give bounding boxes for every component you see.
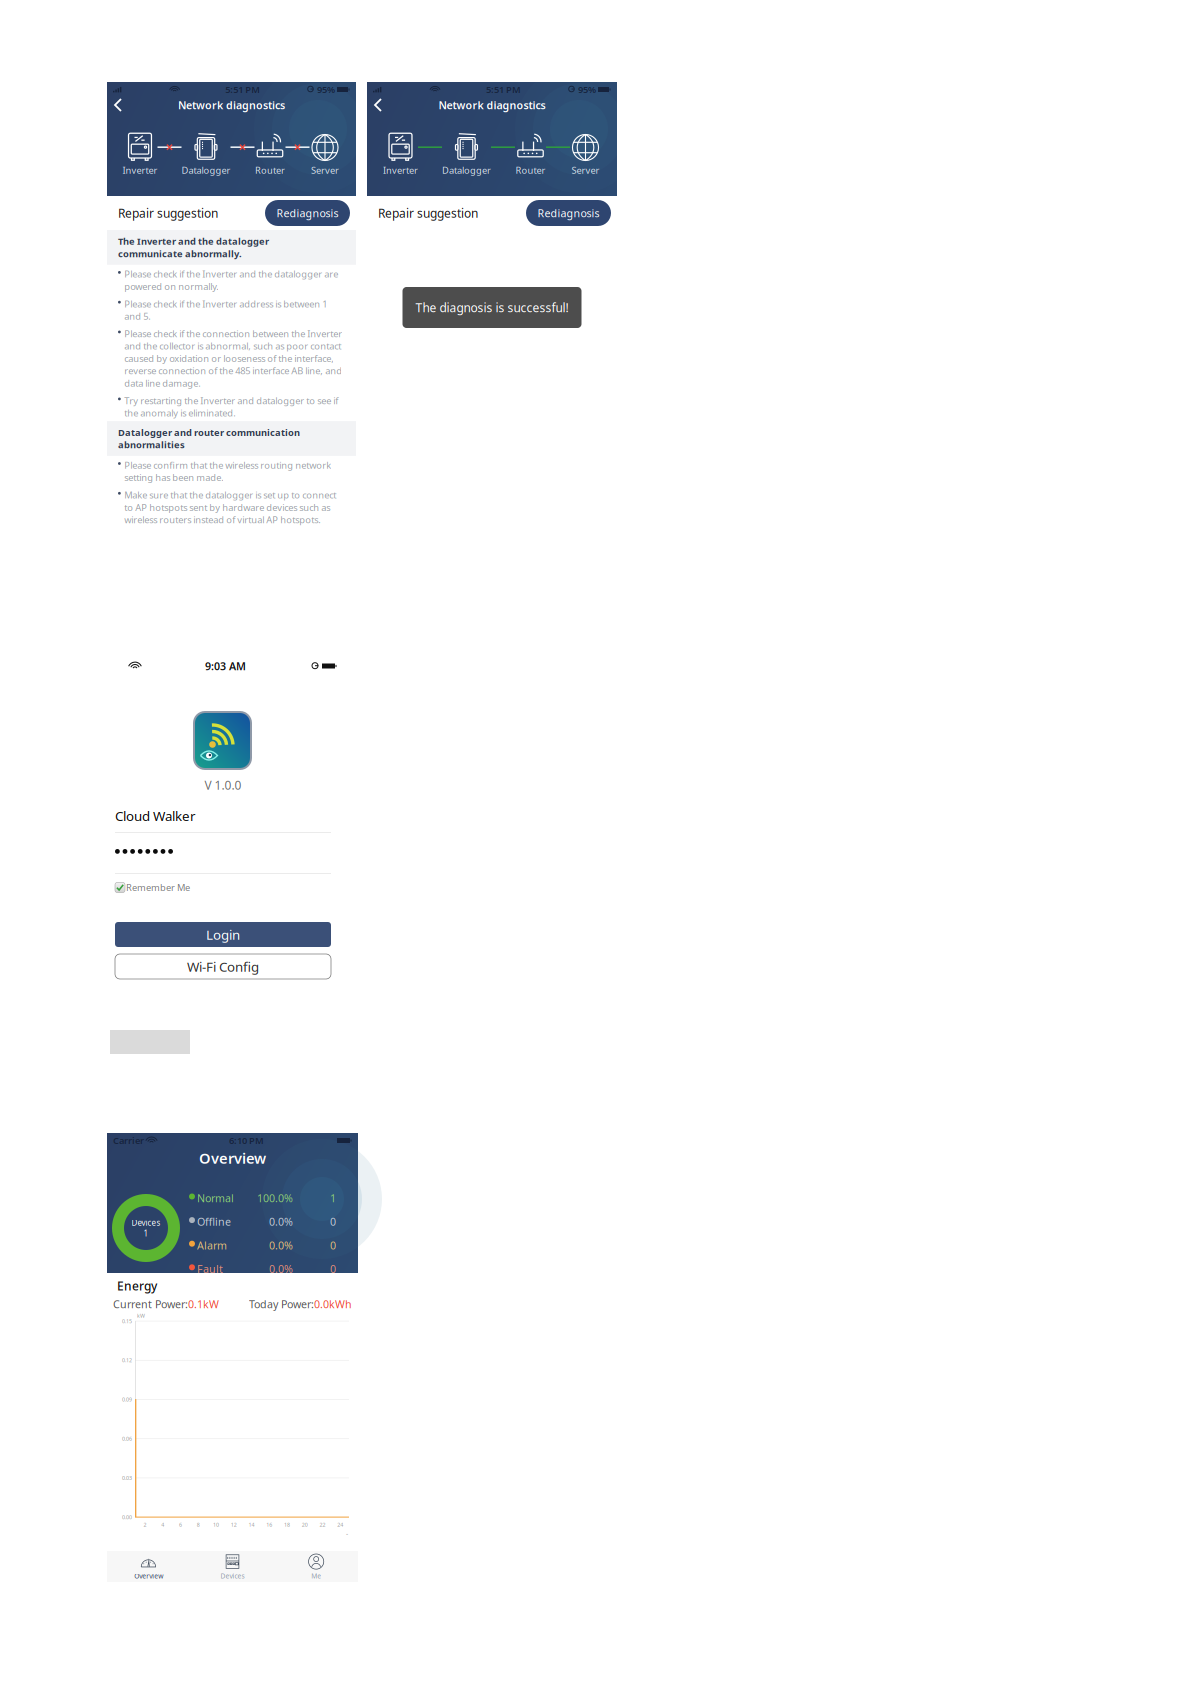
- staticText: Server: [571, 164, 599, 176]
- staticText: Fault: [197, 1262, 223, 1276]
- button[interactable]: Wi-Fi Config: [115, 954, 331, 979]
- staticText: 0.1kW: [188, 1297, 219, 1311]
- staticText: 14: [248, 1521, 254, 1528]
- staticText: Me: [311, 1572, 321, 1580]
- staticText: 16: [266, 1521, 272, 1528]
- staticText: 0.15: [122, 1318, 132, 1325]
- staticText: Cloud Walker: [115, 807, 196, 825]
- staticText: 24: [337, 1521, 343, 1528]
- staticText: Make sure that the datalogger is set up …: [124, 489, 336, 526]
- staticText: 5:51 PM: [225, 83, 260, 96]
- staticText: 0.0kWh: [314, 1297, 352, 1311]
- staticText: Datalogger and router communication abno…: [118, 426, 300, 451]
- staticText: 4: [161, 1521, 164, 1528]
- staticText: 0.06: [122, 1435, 132, 1442]
- staticText: Router: [515, 164, 545, 176]
- staticText: 1: [330, 1191, 336, 1205]
- staticText: Please check if the Inverter and the dat…: [124, 268, 338, 293]
- staticText: 6:10 PM: [229, 1134, 264, 1147]
- staticText: Please check if the connection between t…: [124, 327, 342, 389]
- staticText: Please confirm that the wireless routing…: [124, 459, 331, 484]
- staticText: Login: [206, 926, 240, 943]
- staticText: Datalogger: [181, 164, 230, 176]
- button[interactable]: Rediagnosis: [526, 200, 611, 226]
- staticText: Server: [311, 164, 339, 176]
- staticText: 22: [319, 1521, 325, 1528]
- staticText: 1: [143, 1228, 148, 1239]
- staticText: Network diagnostics: [438, 98, 545, 112]
- button[interactable]: Remember Me: [115, 881, 225, 894]
- staticText: Try restarting the Inverter and datalogg…: [124, 394, 338, 419]
- staticText: Alarm: [197, 1238, 227, 1252]
- staticText: The Inverter and the datalogger communic…: [118, 235, 269, 260]
- staticText: Rediagnosis: [537, 206, 599, 220]
- staticText: Wi-Fi Config: [187, 958, 259, 975]
- button[interactable]: Rediagnosis: [265, 200, 350, 226]
- staticText: 0.03: [122, 1474, 132, 1481]
- staticText: Current Power:: [113, 1297, 188, 1311]
- staticText: 9:03 AM: [205, 659, 246, 673]
- staticText: V 1.0.0: [204, 777, 241, 793]
- staticText: Network diagnostics: [178, 98, 285, 112]
- staticText: Offline: [197, 1215, 231, 1229]
- button[interactable]: Back: [367, 95, 617, 115]
- staticText: Devices: [131, 1217, 160, 1228]
- staticText: 0.00: [122, 1514, 132, 1521]
- staticText: Router: [255, 164, 285, 176]
- staticText: 0: [330, 1262, 336, 1276]
- staticText: Devices: [220, 1572, 244, 1580]
- staticText: Overview: [199, 1148, 266, 1168]
- staticText: 12: [231, 1521, 237, 1528]
- button[interactable]: Devices: [191, 1551, 274, 1582]
- staticText: Today Power:: [249, 1297, 314, 1311]
- staticText: 2: [143, 1521, 146, 1528]
- staticText: Repair suggestion: [118, 205, 218, 221]
- staticText: 0: [330, 1215, 336, 1229]
- staticText: 10: [213, 1521, 219, 1528]
- staticText: Rediagnosis: [276, 206, 338, 220]
- staticText: 0.0%: [269, 1215, 293, 1229]
- staticText: Remember Me: [126, 881, 190, 894]
- staticText: Normal: [197, 1191, 234, 1205]
- staticText: 5:51 PM: [486, 83, 521, 96]
- button[interactable]: Me: [274, 1551, 358, 1582]
- staticText: Datalogger: [442, 164, 491, 176]
- staticText: Repair suggestion: [378, 205, 478, 221]
- staticText: 0.0%: [269, 1262, 293, 1276]
- staticText: 0.09: [122, 1396, 132, 1403]
- staticText: 0.12: [122, 1357, 132, 1364]
- staticText: 20: [302, 1521, 308, 1528]
- staticText: 18: [284, 1521, 290, 1528]
- staticText: 6: [179, 1521, 182, 1528]
- staticText: 95%: [317, 83, 335, 96]
- staticText: kW: [137, 1312, 145, 1319]
- button[interactable]: Back: [107, 95, 356, 115]
- staticText: Energy: [117, 1278, 157, 1294]
- staticText: -: [346, 1529, 348, 1538]
- button[interactable]: Overview: [107, 1551, 191, 1582]
- staticText: 100.0%: [257, 1191, 293, 1205]
- staticText: 8: [197, 1521, 200, 1528]
- staticText: Inverter: [383, 164, 418, 176]
- staticText: 0: [330, 1238, 336, 1252]
- staticText: Please check if the Inverter address is …: [124, 298, 327, 322]
- staticText: 0.0%: [269, 1238, 293, 1252]
- staticText: Overview: [134, 1572, 163, 1580]
- staticText: The diagnosis is successful!: [415, 299, 568, 315]
- staticText: Carrier: [113, 1134, 144, 1147]
- staticText: Inverter: [122, 164, 157, 176]
- staticText: 95%: [578, 83, 596, 96]
- button[interactable]: Login: [115, 922, 331, 947]
